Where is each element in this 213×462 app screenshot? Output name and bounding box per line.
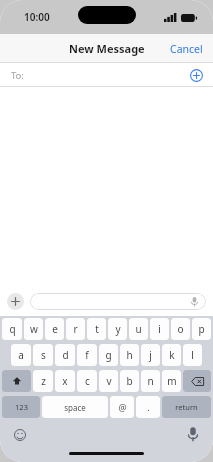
button[interactable]: Dictate — [185, 426, 201, 442]
button[interactable]: h — [120, 344, 139, 366]
button[interactable]: space — [42, 396, 108, 418]
button[interactable]: p — [192, 318, 211, 340]
staticText: c — [85, 374, 90, 388]
button[interactable]: o — [171, 318, 190, 340]
button[interactable]: y — [108, 318, 127, 340]
button[interactable]: f — [77, 344, 97, 366]
button[interactable]: s — [33, 344, 53, 366]
staticText: y — [115, 322, 121, 336]
staticText: j — [149, 348, 152, 362]
staticText: v — [106, 374, 112, 388]
staticText: u — [135, 322, 142, 336]
button[interactable]: Cancel — [160, 36, 213, 62]
staticText: m — [167, 374, 177, 388]
button[interactable]: t — [87, 318, 106, 340]
staticText: e — [52, 322, 58, 336]
staticText: o — [177, 322, 184, 336]
button[interactable]: return — [162, 396, 211, 418]
button[interactable]: 123 — [2, 396, 40, 418]
staticText: New Message — [69, 41, 145, 56]
button[interactable]: w — [24, 318, 43, 340]
staticText: Cancel — [170, 42, 203, 56]
staticText: h — [126, 348, 133, 362]
button[interactable]: e — [45, 318, 64, 340]
button[interactable]: d — [55, 344, 75, 366]
button[interactable]: To: — [0, 63, 213, 87]
button[interactable]: Add attachment — [7, 293, 24, 310]
button[interactable]: x — [55, 370, 75, 392]
button[interactable]: @ — [110, 396, 134, 418]
staticText: space — [64, 402, 86, 413]
staticText: n — [147, 374, 154, 388]
button[interactable]: v — [99, 370, 118, 392]
button[interactable]: a — [11, 344, 31, 366]
staticText: t — [95, 322, 99, 336]
button[interactable]: Emoji — [12, 427, 28, 443]
button[interactable]: i — [150, 318, 169, 340]
staticText: q — [9, 322, 16, 336]
staticText: @ — [118, 401, 127, 413]
staticText: p — [198, 322, 205, 336]
button[interactable]: Dictate — [30, 293, 206, 310]
staticText: r — [73, 322, 78, 336]
staticText: g — [105, 348, 112, 362]
staticText: d — [62, 348, 69, 362]
button[interactable]: m — [162, 370, 181, 392]
button[interactable]: j — [141, 344, 160, 366]
staticText: l — [191, 348, 194, 362]
button[interactable]: Backspace — [183, 370, 211, 392]
button[interactable]: r — [66, 318, 85, 340]
button[interactable]: g — [99, 344, 118, 366]
staticText: x — [62, 374, 68, 388]
staticText: 123 — [15, 402, 28, 412]
staticText: . — [147, 401, 150, 413]
staticText: k — [169, 348, 175, 362]
button[interactable]: c — [77, 370, 97, 392]
button[interactable]: b — [120, 370, 139, 392]
button[interactable]: . — [136, 396, 160, 418]
staticText: s — [41, 348, 46, 362]
staticText: a — [18, 348, 24, 362]
staticText: 10:00 — [24, 10, 50, 24]
button[interactable]: n — [141, 370, 160, 392]
button[interactable]: k — [162, 344, 181, 366]
staticText: i — [158, 322, 161, 336]
button[interactable]: l — [183, 344, 202, 366]
button[interactable]: Add contact — [187, 66, 205, 84]
staticText: f — [85, 348, 89, 362]
staticText: return — [175, 402, 198, 412]
staticText: w — [30, 322, 38, 336]
button[interactable]: Shift — [2, 370, 31, 392]
other: Dictate — [189, 296, 200, 307]
staticText: z — [41, 374, 46, 388]
button[interactable]: q — [2, 318, 22, 340]
button[interactable]: z — [33, 370, 53, 392]
staticText: b — [126, 374, 133, 388]
button[interactable]: u — [129, 318, 148, 340]
staticText: To: — [11, 69, 24, 82]
